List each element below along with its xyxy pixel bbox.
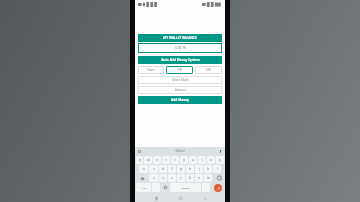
staticText: l bbox=[217, 167, 218, 171]
staticText: r bbox=[165, 158, 167, 162]
button[interactable]: b bbox=[186, 174, 194, 182]
button[interactable]: i bbox=[198, 156, 206, 164]
staticText: f bbox=[171, 167, 173, 171]
button[interactable]: , bbox=[152, 183, 160, 192]
button[interactable]: Settings bbox=[137, 149, 142, 154]
button[interactable]: Voice input bbox=[218, 149, 223, 154]
button[interactable]: 100 bbox=[166, 66, 193, 74]
button[interactable]: h bbox=[186, 165, 194, 173]
button[interactable]: m bbox=[204, 174, 212, 182]
staticText: ?123 bbox=[141, 186, 147, 189]
button[interactable]: Select Bkash bbox=[138, 76, 222, 84]
staticText: English bbox=[181, 186, 190, 189]
staticText: MY WALLET BALANCE bbox=[163, 36, 197, 40]
staticText: q bbox=[139, 158, 141, 162]
button[interactable]: s bbox=[149, 165, 158, 173]
button[interactable]: d bbox=[159, 165, 167, 173]
staticText: GBoard bbox=[175, 149, 185, 153]
staticText: x bbox=[162, 176, 164, 180]
staticText: d bbox=[162, 167, 164, 171]
staticText: Auto Add Money System bbox=[161, 58, 200, 62]
button[interactable]: Share bbox=[138, 66, 164, 74]
staticText: y bbox=[183, 158, 185, 162]
button[interactable]: v bbox=[177, 174, 185, 182]
button[interactable]: n bbox=[195, 174, 203, 182]
staticText: i bbox=[202, 158, 203, 162]
button[interactable]: c bbox=[168, 174, 176, 182]
staticText: 100 bbox=[177, 68, 182, 72]
button[interactable]: e bbox=[153, 156, 161, 164]
staticText: Add Money bbox=[171, 98, 189, 102]
staticText: t bbox=[174, 158, 176, 162]
button[interactable]: a bbox=[139, 165, 148, 173]
button[interactable]: k bbox=[204, 165, 212, 173]
button[interactable]: w bbox=[144, 156, 152, 164]
button[interactable]: x bbox=[159, 174, 167, 182]
button[interactable]: Recents bbox=[152, 194, 160, 202]
button[interactable]: Home bbox=[176, 194, 184, 202]
staticText: 0.00 TK bbox=[175, 46, 186, 50]
staticText: j bbox=[199, 167, 200, 171]
staticText: h bbox=[189, 167, 191, 171]
button[interactable]: ?123 bbox=[136, 183, 151, 192]
staticText: o bbox=[210, 158, 212, 162]
button[interactable]: z bbox=[149, 174, 158, 182]
button[interactable]: Amount bbox=[138, 86, 222, 94]
staticText: , bbox=[156, 186, 157, 190]
staticText: b bbox=[189, 176, 191, 180]
staticText: z bbox=[153, 176, 155, 180]
button[interactable]: Enter bbox=[211, 183, 224, 192]
staticText: p bbox=[219, 158, 221, 162]
staticText: Select Bkash bbox=[172, 78, 189, 82]
button[interactable]: English bbox=[170, 183, 201, 192]
staticText: g bbox=[180, 167, 182, 171]
staticText: v bbox=[180, 176, 182, 180]
button[interactable]: t bbox=[171, 156, 179, 164]
button[interactable]: u bbox=[189, 156, 197, 164]
button[interactable]: Add Money bbox=[138, 96, 222, 104]
button[interactable]: r bbox=[162, 156, 170, 164]
button[interactable]: 500 bbox=[195, 66, 222, 74]
button[interactable]: q bbox=[136, 156, 143, 164]
staticText: . bbox=[206, 186, 207, 190]
staticText: 500 bbox=[206, 68, 211, 72]
staticText: e bbox=[156, 158, 158, 162]
button[interactable]: Backspace bbox=[213, 174, 224, 182]
button[interactable]: y bbox=[180, 156, 188, 164]
staticText: w bbox=[147, 158, 150, 162]
button[interactable]: MY WALLET BALANCE bbox=[138, 34, 222, 42]
button[interactable]: 0.00 TK bbox=[138, 43, 222, 53]
button[interactable]: Auto Add Money System bbox=[138, 56, 222, 64]
button[interactable]: g bbox=[177, 165, 185, 173]
staticText: s bbox=[153, 167, 155, 171]
staticText: c bbox=[171, 176, 173, 180]
staticText: Amount bbox=[175, 88, 186, 92]
staticText: k bbox=[207, 167, 209, 171]
staticText: m bbox=[207, 176, 210, 180]
button[interactable]: o bbox=[207, 156, 215, 164]
staticText: a bbox=[143, 167, 145, 171]
button[interactable]: p bbox=[216, 156, 224, 164]
staticText: Share bbox=[147, 68, 155, 72]
staticText: u bbox=[192, 158, 194, 162]
button[interactable]: Back bbox=[201, 194, 209, 202]
button[interactable]: j bbox=[195, 165, 203, 173]
button[interactable]: f bbox=[168, 165, 176, 173]
button[interactable]: l bbox=[213, 165, 221, 173]
button[interactable]: Shift bbox=[136, 174, 148, 182]
staticText: n bbox=[198, 176, 200, 180]
button[interactable]: Emoji bbox=[161, 183, 169, 192]
